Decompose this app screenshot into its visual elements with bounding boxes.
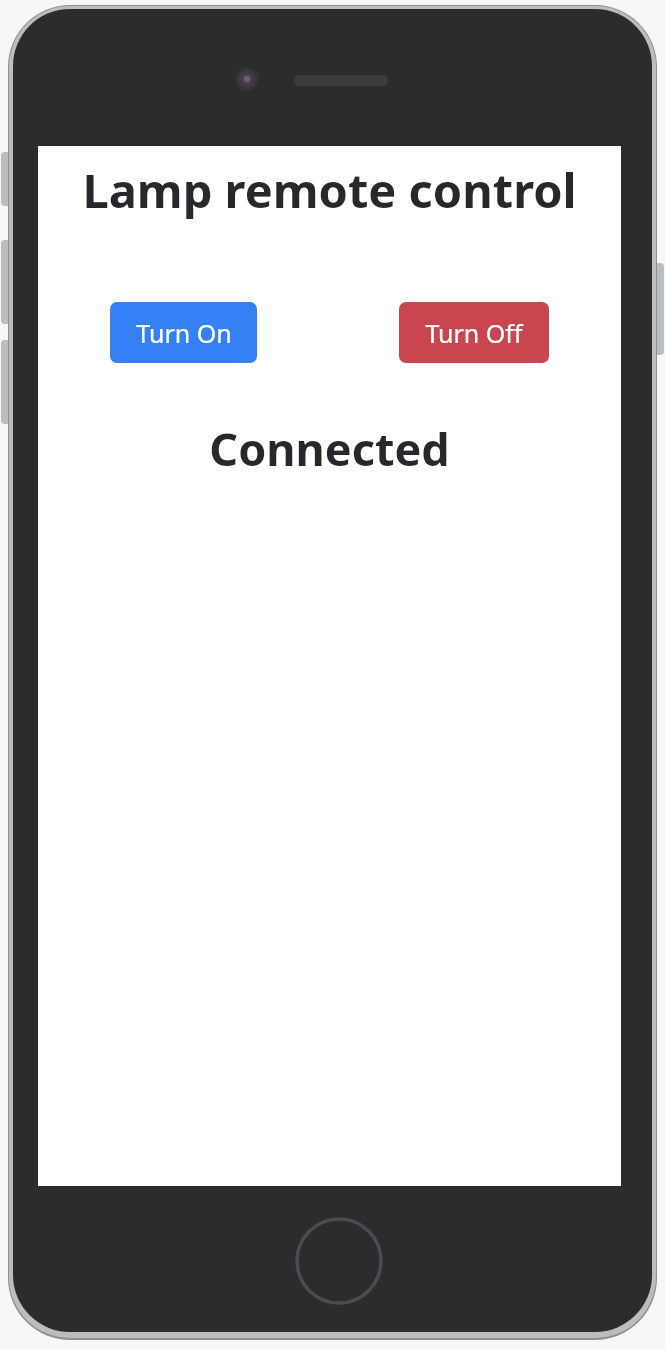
staticText: Turn On <box>136 316 232 350</box>
button[interactable]: Turn Off <box>399 302 549 363</box>
button[interactable]: Turn On <box>110 302 257 363</box>
staticText: Turn Off <box>425 316 523 350</box>
staticText: Connected <box>38 418 621 479</box>
staticText: Lamp remote control <box>38 158 621 222</box>
